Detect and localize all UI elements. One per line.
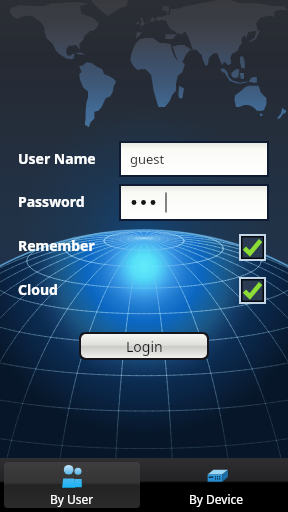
staticText: Cloud	[18, 280, 58, 299]
staticText: By User	[50, 491, 94, 507]
staticText: Password	[18, 192, 85, 211]
button[interactable]: Toggle	[239, 277, 266, 304]
button[interactable]: guest	[121, 143, 267, 175]
staticText: By Device	[189, 491, 244, 507]
button[interactable]	[121, 186, 267, 219]
staticText: Remember	[18, 236, 95, 255]
button[interactable]: By Device	[144, 458, 288, 512]
staticText: guest	[130, 150, 165, 168]
button[interactable]: By User	[0, 458, 144, 512]
button[interactable]: Toggle	[239, 234, 266, 261]
staticText: Login	[126, 337, 163, 356]
button[interactable]: Login	[81, 334, 207, 358]
staticText: User Name	[18, 149, 96, 168]
